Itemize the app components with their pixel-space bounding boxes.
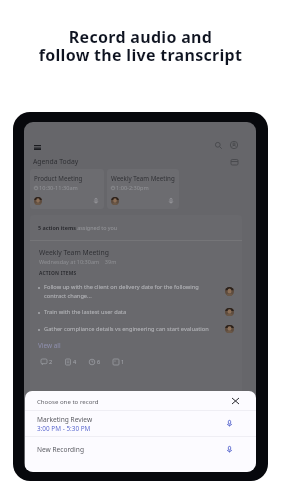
button[interactable]: Record	[225, 419, 234, 428]
staticText: 1:00-2:30pm	[116, 184, 149, 192]
staticText: Weekly Team Meeting	[111, 174, 175, 182]
staticText: 10:30-11:30am	[39, 184, 78, 192]
button[interactable]: Weekly Team Meeting	[107, 169, 179, 209]
staticText: 1	[121, 358, 125, 366]
staticText: Choose one to record	[37, 397, 99, 405]
button[interactable]: View all	[38, 341, 61, 349]
button[interactable]: Gather compliance details vs engineering…	[38, 325, 234, 333]
staticText: Agenda Today	[33, 157, 79, 166]
staticText: Marketing Review	[37, 415, 93, 424]
staticText: Weekly Team Meeting	[39, 248, 109, 257]
button[interactable]: New Recording	[25, 437, 256, 463]
staticText: New Recording	[37, 445, 84, 454]
staticText: Wednesday at 10:30am 39m	[39, 258, 117, 265]
button[interactable]: Train with the lastest user data	[38, 308, 234, 316]
button[interactable]: Marketing Review	[25, 411, 256, 436]
button[interactable]: Record	[167, 197, 175, 205]
staticText: Train with the lastest user data	[44, 308, 222, 316]
staticText: 4	[73, 358, 77, 366]
button[interactable]: Search	[210, 137, 226, 153]
button[interactable]: Menu	[29, 139, 45, 155]
button[interactable]: Record	[225, 445, 234, 454]
button[interactable]: Calendar	[226, 154, 242, 170]
staticText: Gather compliance details vs engineering…	[44, 325, 222, 333]
button[interactable]: Account	[226, 137, 242, 153]
staticText: 3:00 PM - 5:30 PM	[37, 424, 91, 433]
staticText: ACTION ITEMS	[39, 270, 77, 277]
button[interactable]: Record	[92, 197, 100, 205]
button[interactable]: Follow up with the client on delivery da…	[38, 283, 234, 300]
staticText: Record audio and follow the live transcr…	[0, 26, 281, 66]
staticText: 6	[97, 358, 101, 366]
staticText: Product Meeting	[34, 174, 83, 182]
button[interactable]: Product Meeting	[30, 169, 104, 209]
button[interactable]: Close	[230, 395, 241, 406]
staticText: 2	[49, 358, 53, 366]
staticText: 5 action items assigned to you	[38, 224, 118, 231]
staticText: View all	[38, 341, 61, 349]
staticText: Follow up with the client on delivery da…	[44, 283, 222, 299]
